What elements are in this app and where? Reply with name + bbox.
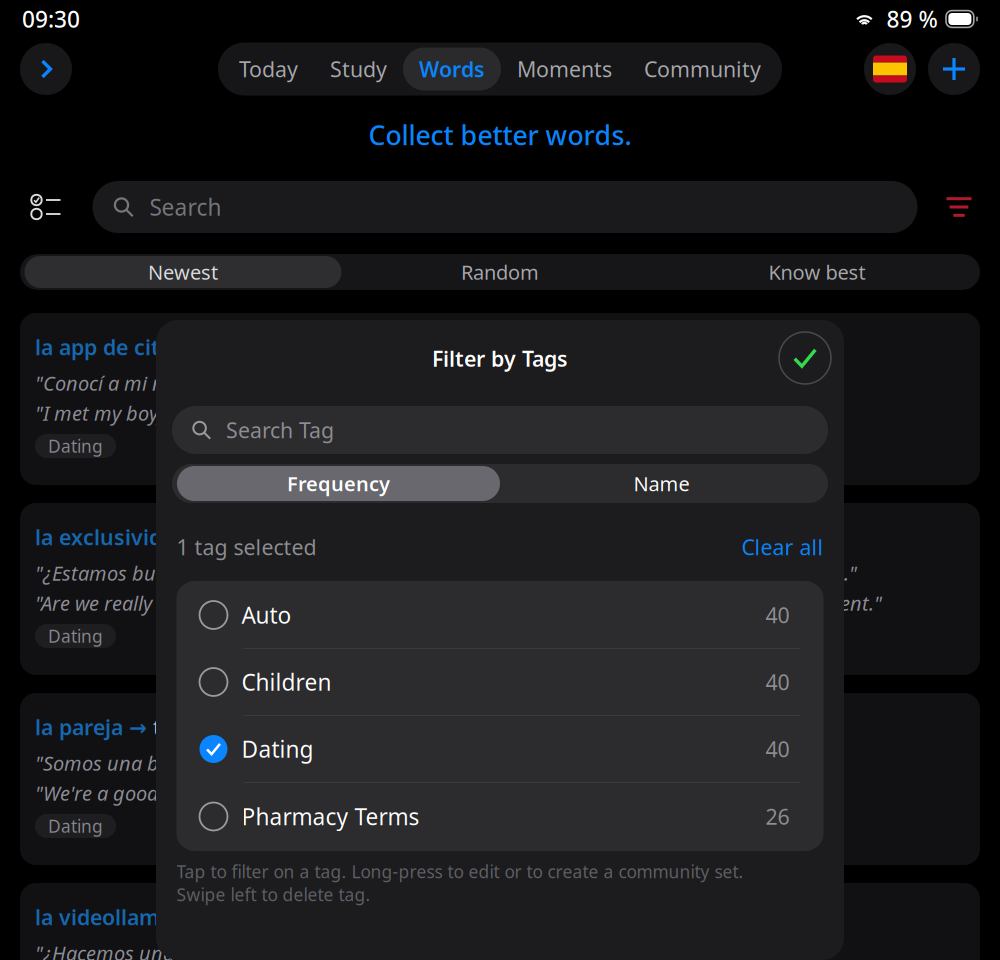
staticText: Dating bbox=[48, 624, 103, 647]
staticText: 40 bbox=[765, 735, 789, 763]
button[interactable]: Newest bbox=[24, 256, 341, 288]
button[interactable]: Back bbox=[20, 43, 72, 95]
staticText: exclusivity, and also an early and very … bbox=[211, 523, 724, 551]
button[interactable]: Moments bbox=[501, 47, 628, 90]
staticText: Search Tag bbox=[226, 416, 334, 444]
button[interactable]: Random bbox=[341, 256, 658, 288]
button[interactable]: Language bbox=[864, 43, 916, 95]
staticText: la app de citas → bbox=[35, 333, 207, 361]
button[interactable]: Name bbox=[500, 466, 823, 501]
staticText: Moments bbox=[517, 55, 612, 83]
staticText: "¿Estamos buscando exclusividad? Me gust… bbox=[35, 560, 857, 586]
staticText: Auto bbox=[241, 600, 291, 630]
staticText: Collect better words. bbox=[368, 117, 631, 153]
staticText: Filter by Tags bbox=[432, 344, 568, 373]
staticText: 40 bbox=[765, 668, 789, 696]
staticText: "I met my boyfriend on a dating app and … bbox=[35, 400, 819, 426]
button[interactable]: Add bbox=[928, 43, 980, 95]
staticText: Dating bbox=[48, 434, 103, 457]
button[interactable]: Frequency bbox=[177, 466, 500, 501]
staticText: "We're a good couple and we have underst… bbox=[35, 780, 739, 806]
button[interactable]: Know best bbox=[658, 256, 975, 288]
staticText: Study bbox=[330, 55, 387, 83]
button[interactable]: Community bbox=[628, 47, 777, 90]
staticText: Search bbox=[149, 192, 221, 222]
staticText: Community bbox=[644, 55, 761, 83]
staticText: 40 bbox=[765, 601, 789, 629]
button[interactable]: Study bbox=[314, 47, 403, 90]
staticText: la exclusividad → bbox=[35, 523, 211, 551]
staticText: Name bbox=[633, 470, 689, 497]
button[interactable]: Today bbox=[223, 47, 314, 90]
button[interactable]: Auto bbox=[176, 582, 823, 649]
staticText: 1 tag selected bbox=[176, 533, 316, 561]
button[interactable]: Select bbox=[26, 187, 66, 227]
staticText: Today bbox=[239, 55, 298, 83]
staticText: la pareja → bbox=[35, 713, 147, 741]
staticText: 26 bbox=[765, 802, 789, 831]
button[interactable]: Clear all bbox=[741, 533, 823, 561]
staticText: Clear all bbox=[741, 533, 823, 561]
button[interactable]: Filter bbox=[944, 192, 974, 222]
staticText: Dating bbox=[241, 734, 313, 764]
staticText: Frequency bbox=[287, 470, 390, 497]
button[interactable]: Pharmacy Terms bbox=[176, 783, 823, 850]
staticText: Words bbox=[419, 55, 485, 83]
staticText: 09:30 bbox=[22, 4, 80, 34]
staticText: 89 % bbox=[886, 4, 937, 34]
staticText: Tap to filter on a tag. Long-press to ed… bbox=[176, 860, 743, 906]
button[interactable]: Done bbox=[779, 332, 831, 384]
button[interactable]: Dating bbox=[176, 716, 823, 783]
staticText: "¿Hacemos una videollamada esta tarde pa… bbox=[35, 940, 718, 960]
staticText: Know best bbox=[768, 259, 865, 285]
staticText: Random bbox=[461, 259, 539, 285]
staticText: Pharmacy Terms bbox=[241, 801, 419, 831]
staticText: the couple bbox=[147, 713, 259, 741]
staticText: "Conocí a mi novio en una app de citas y… bbox=[35, 370, 694, 396]
staticText: "Somos una buena pareja y nos entendemos… bbox=[35, 750, 772, 776]
staticText: Newest bbox=[148, 259, 218, 285]
button[interactable]: Children bbox=[176, 649, 823, 716]
staticText: la videollamada → bbox=[35, 903, 220, 931]
staticText: Children bbox=[241, 667, 331, 697]
staticText: "Are we really looking for exclusivity h… bbox=[35, 590, 882, 616]
staticText: Dating bbox=[48, 814, 103, 837]
button[interactable]: Words bbox=[403, 47, 501, 90]
